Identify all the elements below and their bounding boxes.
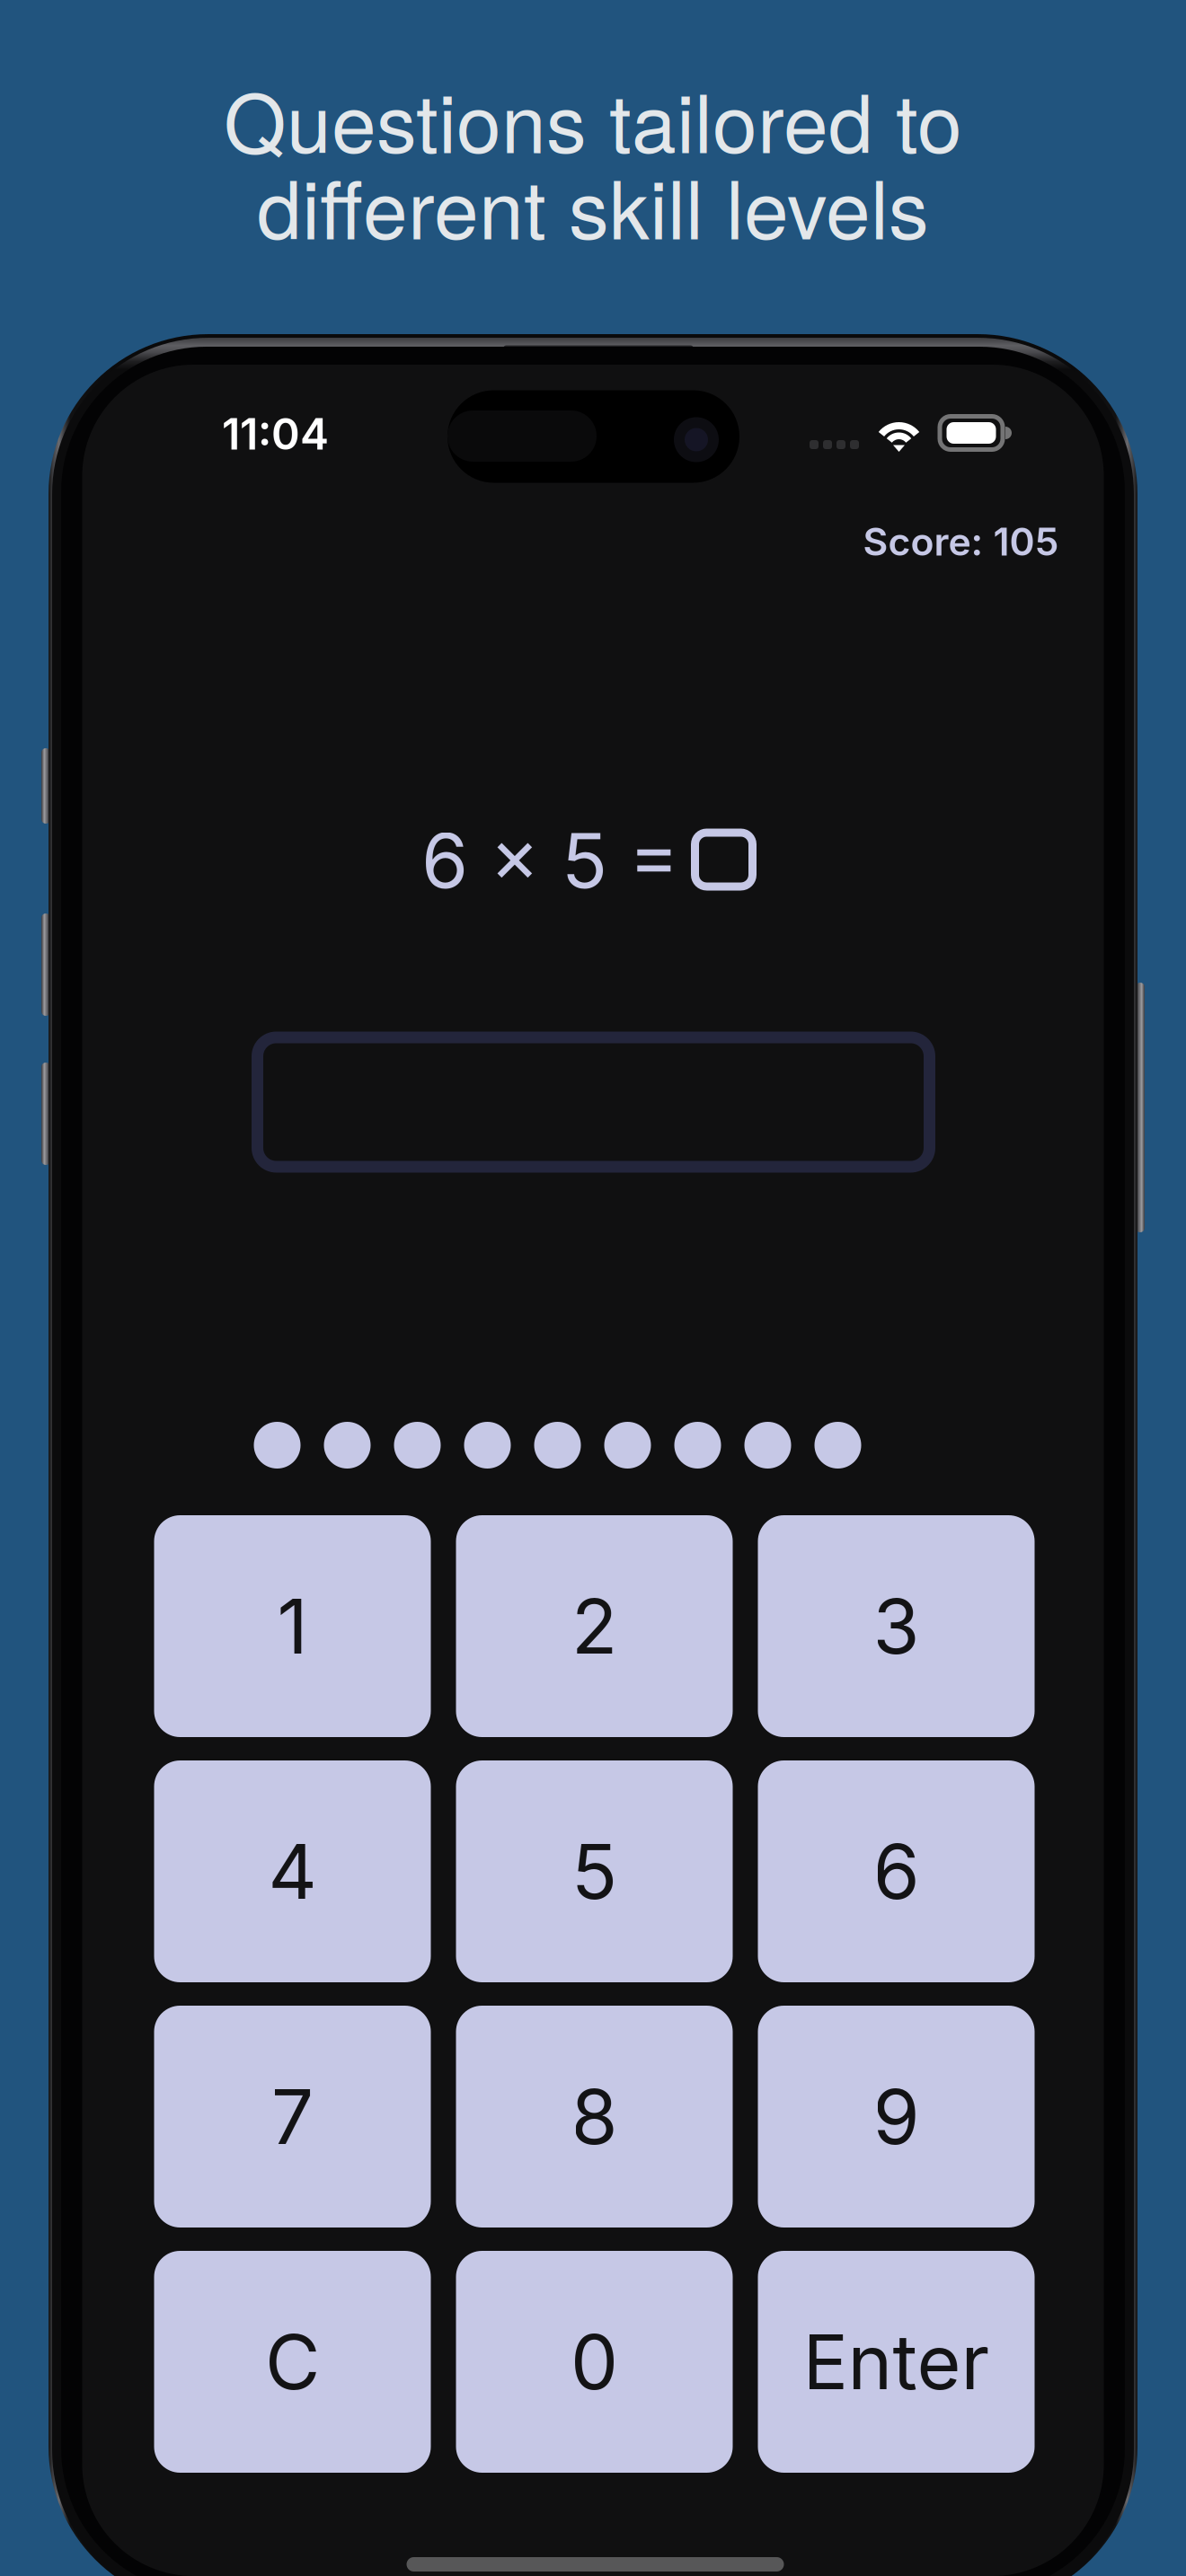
button[interactable]: Score: 105 xyxy=(863,518,1059,565)
staticText: 4 xyxy=(268,1826,317,1917)
button[interactable]: 3 xyxy=(758,1515,1035,1737)
button[interactable]: 1 xyxy=(154,1515,431,1737)
staticText: 7 xyxy=(271,2071,314,2162)
staticText: 6 xyxy=(873,1826,920,1917)
button[interactable]: 9 xyxy=(758,2006,1035,2228)
staticText: Questions tailored to xyxy=(224,61,962,176)
button[interactable]: C xyxy=(154,2251,431,2473)
staticText: Enter xyxy=(803,2316,990,2407)
staticText: C xyxy=(265,2316,320,2407)
staticText: Score: 105 xyxy=(863,518,1059,565)
staticText: 1 xyxy=(277,1581,308,1672)
button[interactable]: 8 xyxy=(456,2006,733,2228)
staticText: different skill levels xyxy=(257,147,929,262)
staticText: 5 xyxy=(571,1826,617,1917)
button[interactable]: Enter xyxy=(758,2251,1035,2473)
button[interactable]: 7 xyxy=(154,2006,431,2228)
staticText: 3 xyxy=(873,1581,920,1672)
button[interactable]: 5 xyxy=(456,1760,733,1982)
staticText: 0 xyxy=(571,2316,618,2407)
button[interactable]: 4 xyxy=(154,1760,431,1982)
button[interactable]: 2 xyxy=(456,1515,733,1737)
staticText: 2 xyxy=(571,1581,617,1672)
staticText: 6 × 5 = xyxy=(421,815,679,906)
staticText: 9 xyxy=(873,2071,920,2162)
button[interactable]: 6 xyxy=(758,1760,1035,1982)
staticText: 8 xyxy=(571,2071,618,2162)
button[interactable]: 0 xyxy=(456,2251,733,2473)
staticText: 11:04 xyxy=(222,408,329,460)
